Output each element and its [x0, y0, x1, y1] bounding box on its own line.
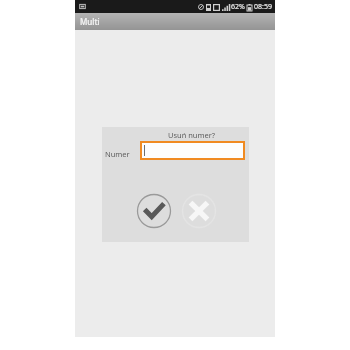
button[interactable] [140, 141, 245, 160]
staticText: 62% [231, 2, 245, 12]
button[interactable]: Potwierdź [136, 193, 172, 229]
button[interactable]: Anuluj [181, 193, 217, 229]
staticText: Numer [105, 149, 130, 159]
staticText: Multi [80, 16, 100, 27]
staticText: 08:59 [254, 2, 272, 12]
staticText: Usuń numer? [140, 130, 243, 140]
